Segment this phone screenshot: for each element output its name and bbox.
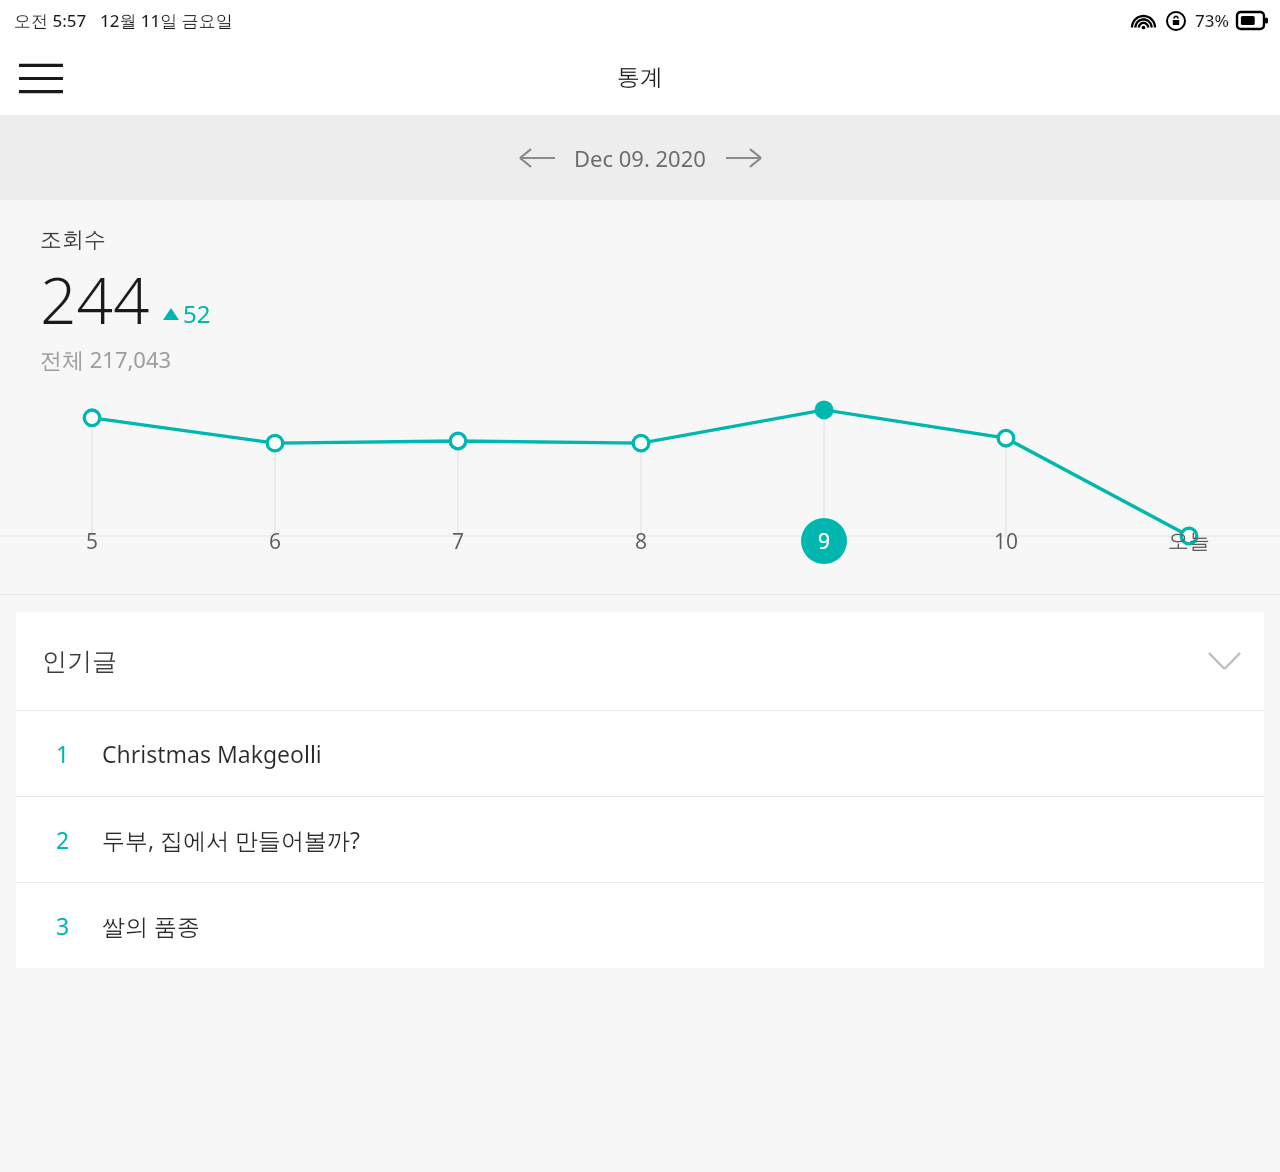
staticText: 244	[40, 256, 150, 343]
button[interactable]: 8	[614, 514, 668, 568]
staticText: 9	[818, 527, 831, 556]
staticText: 1	[56, 738, 70, 769]
staticText: 12월 11일 금요일	[100, 9, 233, 32]
staticText: 통계	[617, 63, 663, 92]
staticText: 전체 217,043	[40, 344, 172, 374]
button[interactable]: 5	[65, 514, 119, 568]
staticText: 3	[56, 910, 70, 941]
button[interactable]: 1	[16, 711, 1264, 796]
staticText: 두부, 집에서 만들어볼까?	[102, 824, 361, 855]
staticText: 2	[56, 824, 70, 855]
staticText: 8	[635, 527, 648, 556]
button[interactable]: Menu	[12, 49, 70, 107]
button[interactable]: 2	[16, 797, 1264, 882]
staticText: 쌀의 품종	[102, 910, 200, 941]
staticText: 52	[183, 297, 211, 330]
staticText: 6	[269, 527, 282, 556]
button[interactable]: 10	[979, 514, 1033, 568]
button[interactable]: 인기글	[16, 612, 1264, 710]
staticText: Dec 09. 2020	[574, 143, 706, 173]
staticText: 10	[994, 527, 1019, 556]
staticText: 조회수	[40, 226, 106, 254]
button[interactable]: 7	[431, 514, 485, 568]
staticText: 7	[452, 527, 465, 556]
staticText: 73%	[1195, 9, 1229, 32]
staticText: 인기글	[42, 646, 117, 677]
staticText: 오전 5:57	[14, 9, 87, 32]
staticText: 오늘	[1168, 528, 1210, 554]
staticText: Christmas Makgeolli	[102, 738, 322, 769]
button[interactable]: 3	[16, 883, 1264, 968]
staticText: 5	[86, 527, 99, 556]
button[interactable]: Next day	[716, 131, 770, 185]
other: Collapse	[1198, 635, 1250, 687]
button[interactable]: 오늘	[1162, 514, 1216, 568]
button[interactable]: Previous day	[510, 131, 564, 185]
button[interactable]: 6	[248, 514, 302, 568]
button[interactable]: 9	[797, 514, 851, 568]
